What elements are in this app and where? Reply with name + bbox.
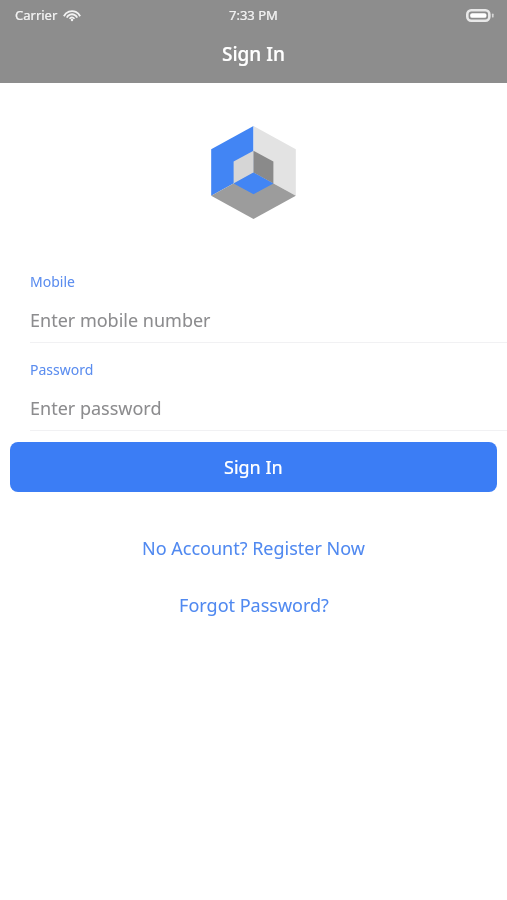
staticText: Enter password [30,396,162,421]
staticText: Carrier [15,6,58,24]
staticText: Sign In [222,41,285,67]
button[interactable]: Sign In [10,442,497,492]
button[interactable]: No Account? Register Now [0,536,507,561]
staticText: Mobile [30,272,75,291]
staticText: No Account? Register Now [142,536,365,561]
button[interactable]: Forgot Password? [0,593,507,618]
staticText: 7:33 PM [229,6,278,24]
staticText: Password [30,360,94,379]
other: Wi-Fi [64,9,80,21]
button[interactable]: Enter password [0,392,507,424]
other: Battery [466,9,494,22]
other: App logo [207,126,300,219]
staticText: Forgot Password? [179,593,329,618]
button[interactable]: Enter mobile number [0,304,507,336]
staticText: Sign In [224,455,283,480]
staticText: Enter mobile number [30,308,211,333]
